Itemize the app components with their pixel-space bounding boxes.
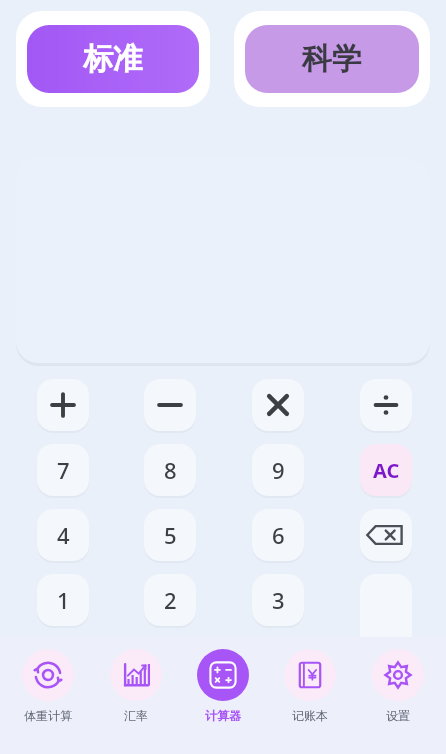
staticText: 科学 (302, 40, 362, 78)
staticText: 1 (57, 585, 70, 615)
button[interactable]: Backspace (360, 509, 412, 561)
button[interactable]: 2 (144, 574, 196, 626)
button[interactable]: 8 (144, 444, 196, 496)
staticText: 标准 (83, 40, 143, 78)
button[interactable]: 体重计算 (9, 647, 87, 723)
button[interactable]: Equals (360, 574, 412, 691)
button[interactable]: 6 (252, 509, 304, 561)
staticText: AC (373, 457, 400, 484)
staticText: 计算器 (205, 708, 241, 723)
staticText: 4 (57, 520, 70, 550)
button[interactable]: 3 (252, 574, 304, 626)
button[interactable]: 1 (37, 574, 89, 626)
button[interactable]: Plus (37, 379, 89, 431)
staticText: 汇率 (124, 708, 148, 723)
button[interactable]: 5 (144, 509, 196, 561)
button[interactable]: Divide (360, 379, 412, 431)
staticText: 设置 (386, 708, 410, 723)
button[interactable]: 4 (37, 509, 89, 561)
button[interactable]: 科学 (234, 11, 430, 107)
staticText: 体重计算 (24, 708, 72, 723)
staticText: 2 (164, 585, 177, 615)
staticText: 7 (57, 455, 70, 485)
staticText: 9 (272, 455, 285, 485)
button[interactable]: AC (360, 444, 412, 496)
button[interactable]: 标准 (16, 11, 210, 107)
button[interactable]: 9 (252, 444, 304, 496)
button[interactable]: Minus (144, 379, 196, 431)
staticText: 8 (164, 455, 177, 485)
button[interactable]: 汇率 (97, 647, 175, 723)
button[interactable]: 设置 (359, 647, 437, 723)
button[interactable]: 计算器 (184, 647, 262, 723)
staticText: 3 (272, 585, 285, 615)
staticText: 记账本 (292, 708, 328, 723)
staticText: 6 (272, 520, 285, 550)
button[interactable]: 7 (37, 444, 89, 496)
button[interactable]: 记账本 (271, 647, 349, 723)
staticText: 5 (164, 520, 177, 550)
button[interactable]: Multiply (252, 379, 304, 431)
